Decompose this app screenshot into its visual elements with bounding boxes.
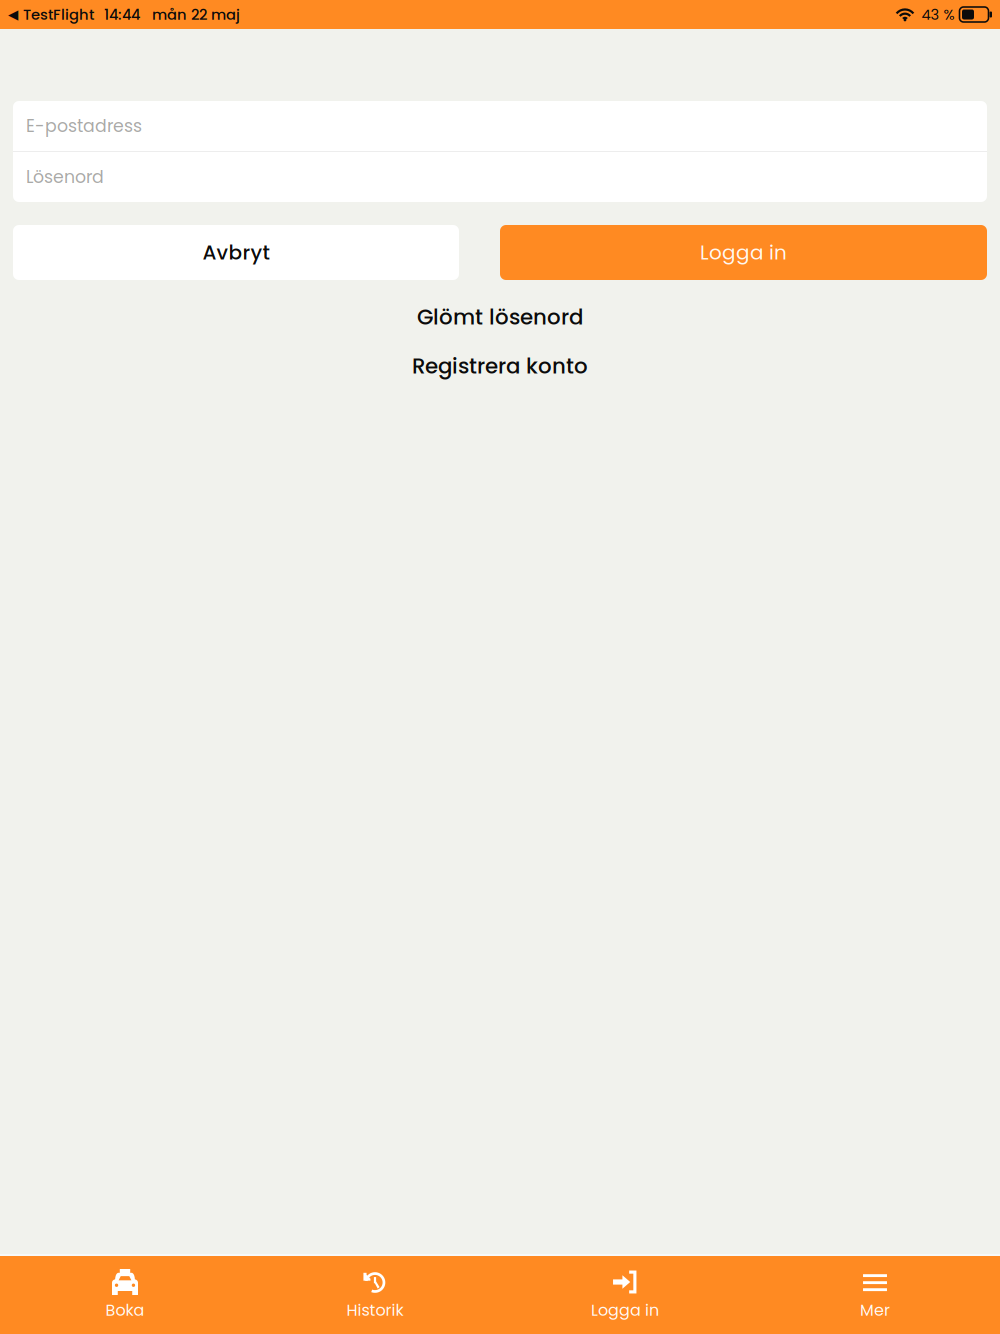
staticText: Logga in	[700, 238, 787, 266]
staticText: Lösenord	[26, 165, 104, 189]
button[interactable]: Boka	[0, 1256, 250, 1334]
staticText: 14:44	[104, 4, 140, 25]
button[interactable]: Historik	[250, 1256, 500, 1334]
button[interactable]: Registrera konto	[412, 350, 588, 382]
staticText: Mer	[860, 1299, 890, 1321]
button[interactable]: Logga in	[500, 1256, 750, 1334]
staticText: mån 22 maj	[152, 4, 240, 25]
staticText: Registrera konto	[412, 351, 588, 381]
staticText: Glömt lösenord	[417, 302, 583, 332]
staticText: ◀	[8, 7, 18, 22]
staticText: Historik	[346, 1299, 403, 1321]
button[interactable]: Glömt lösenord	[417, 301, 583, 333]
staticText: Boka	[105, 1299, 144, 1321]
button[interactable]: Mer	[750, 1256, 1000, 1334]
button[interactable]: Logga in	[500, 225, 987, 280]
staticText: Avbryt	[202, 238, 269, 266]
staticText: Logga in	[591, 1299, 659, 1321]
staticText: E-postadress	[26, 114, 142, 138]
staticText: TestFlight	[23, 4, 94, 25]
button[interactable]: Avbryt	[13, 225, 459, 280]
staticText: 43 %	[921, 4, 954, 25]
